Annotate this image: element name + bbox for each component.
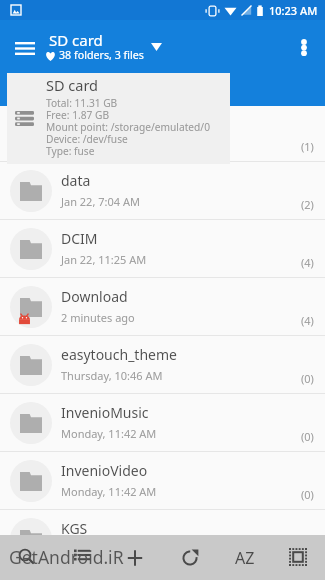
button[interactable]: KGS [0,510,325,535]
staticText: SD card [46,75,99,95]
staticText: easytouch_theme [61,345,177,364]
staticText: Total: 11.31 GB [46,98,118,110]
staticText: AZ [235,547,255,569]
button[interactable]: Download [0,278,325,336]
staticText: GetAndroid.iR [9,545,124,569]
staticText: InvenioMusic [61,403,149,422]
staticText: (0) [301,371,314,386]
staticText: KGS [61,519,88,535]
staticText: 2 minutes ago [61,310,135,325]
staticText: Device: /dev/fuse [46,134,128,146]
staticText: (4) [301,313,314,328]
button[interactable]: Refresh [173,541,207,575]
staticText: DCIM [61,229,98,248]
button[interactable]: DCIM [0,220,325,278]
button[interactable]: Select all [281,540,315,574]
button[interactable]: data [0,162,325,220]
button[interactable]: Add [118,541,152,575]
staticText: Thursday, 10:46 AM [61,368,163,383]
staticText: Free: 1.87 GB [46,110,110,122]
staticText: (0) [301,429,314,444]
staticText: Jan 22, 7:04 AM [61,136,140,151]
staticText: (1) [301,139,314,154]
button[interactable]: More options [286,29,322,65]
button[interactable]: Choose storage [140,31,172,63]
staticText: Jan 22, 7:04 AM [61,194,140,209]
staticText: 10:23 AM [269,3,318,18]
staticText: Jan 22, 11:25 AM [61,252,147,267]
staticText: Monday, 11:42 AM [61,484,157,499]
staticText: Monday, 11:42 AM [61,426,157,441]
staticText: Notify [61,113,101,132]
button[interactable]: Search [8,538,42,572]
staticText: (4) [301,255,314,270]
staticText: data [61,171,91,190]
staticText: (2) [301,197,314,212]
staticText: InvenioVideo [61,461,148,480]
button[interactable]: Open navigation drawer [6,30,43,67]
staticText: Download [61,287,128,306]
button[interactable]: Notify [0,106,325,162]
button[interactable]: List view [65,537,99,571]
button[interactable]: InvenioMusic [0,394,325,452]
button[interactable]: InvenioVideo [0,452,325,510]
staticText: Type: fuse [46,146,95,158]
staticText: Mount point: /storage/emulated/0 [46,122,210,134]
button[interactable]: easytouch_theme [0,336,325,394]
button[interactable]: AZ [228,541,262,575]
staticText: SD card [49,30,103,50]
staticText: (0) [301,487,314,502]
staticText: 38 folders, 3 files [59,48,144,63]
